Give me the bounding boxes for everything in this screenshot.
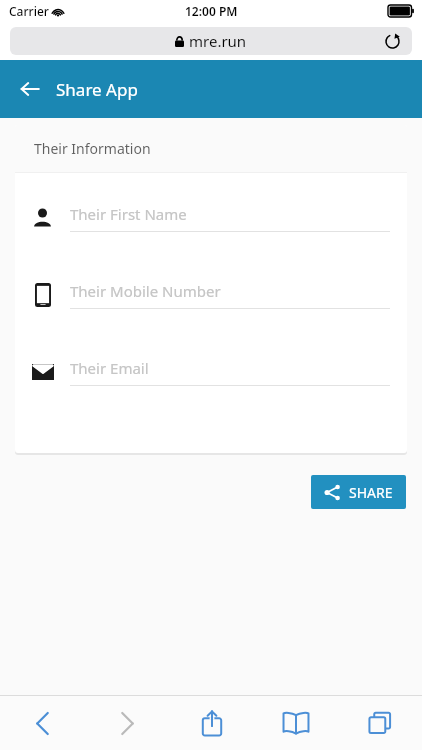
- button[interactable]: SHARE: [311, 475, 406, 509]
- staticText: mre.run: [189, 31, 247, 51]
- staticText: Their First Name: [70, 204, 187, 224]
- button[interactable]: mre.run: [10, 27, 412, 55]
- staticText: Their Email: [70, 358, 149, 378]
- button[interactable]: Back: [0, 696, 85, 750]
- button[interactable]: Back: [10, 69, 50, 109]
- button[interactable]: Their Email: [15, 355, 407, 388]
- staticText: 12:00 PM: [185, 3, 238, 19]
- staticText: Their Mobile Number: [70, 281, 221, 301]
- staticText: Carrier: [9, 3, 49, 19]
- staticText: Their Information: [34, 139, 151, 158]
- staticText: Share App: [56, 78, 138, 101]
- button[interactable]: Bookmarks: [254, 696, 338, 750]
- button[interactable]: Forward: [85, 696, 170, 750]
- button[interactable]: Their First Name: [15, 201, 407, 234]
- button[interactable]: Reload: [385, 34, 400, 49]
- staticText: SHARE: [349, 483, 393, 502]
- button[interactable]: Tabs: [338, 696, 422, 750]
- button[interactable]: Share: [170, 696, 254, 750]
- button[interactable]: Their Mobile Number: [15, 278, 407, 311]
